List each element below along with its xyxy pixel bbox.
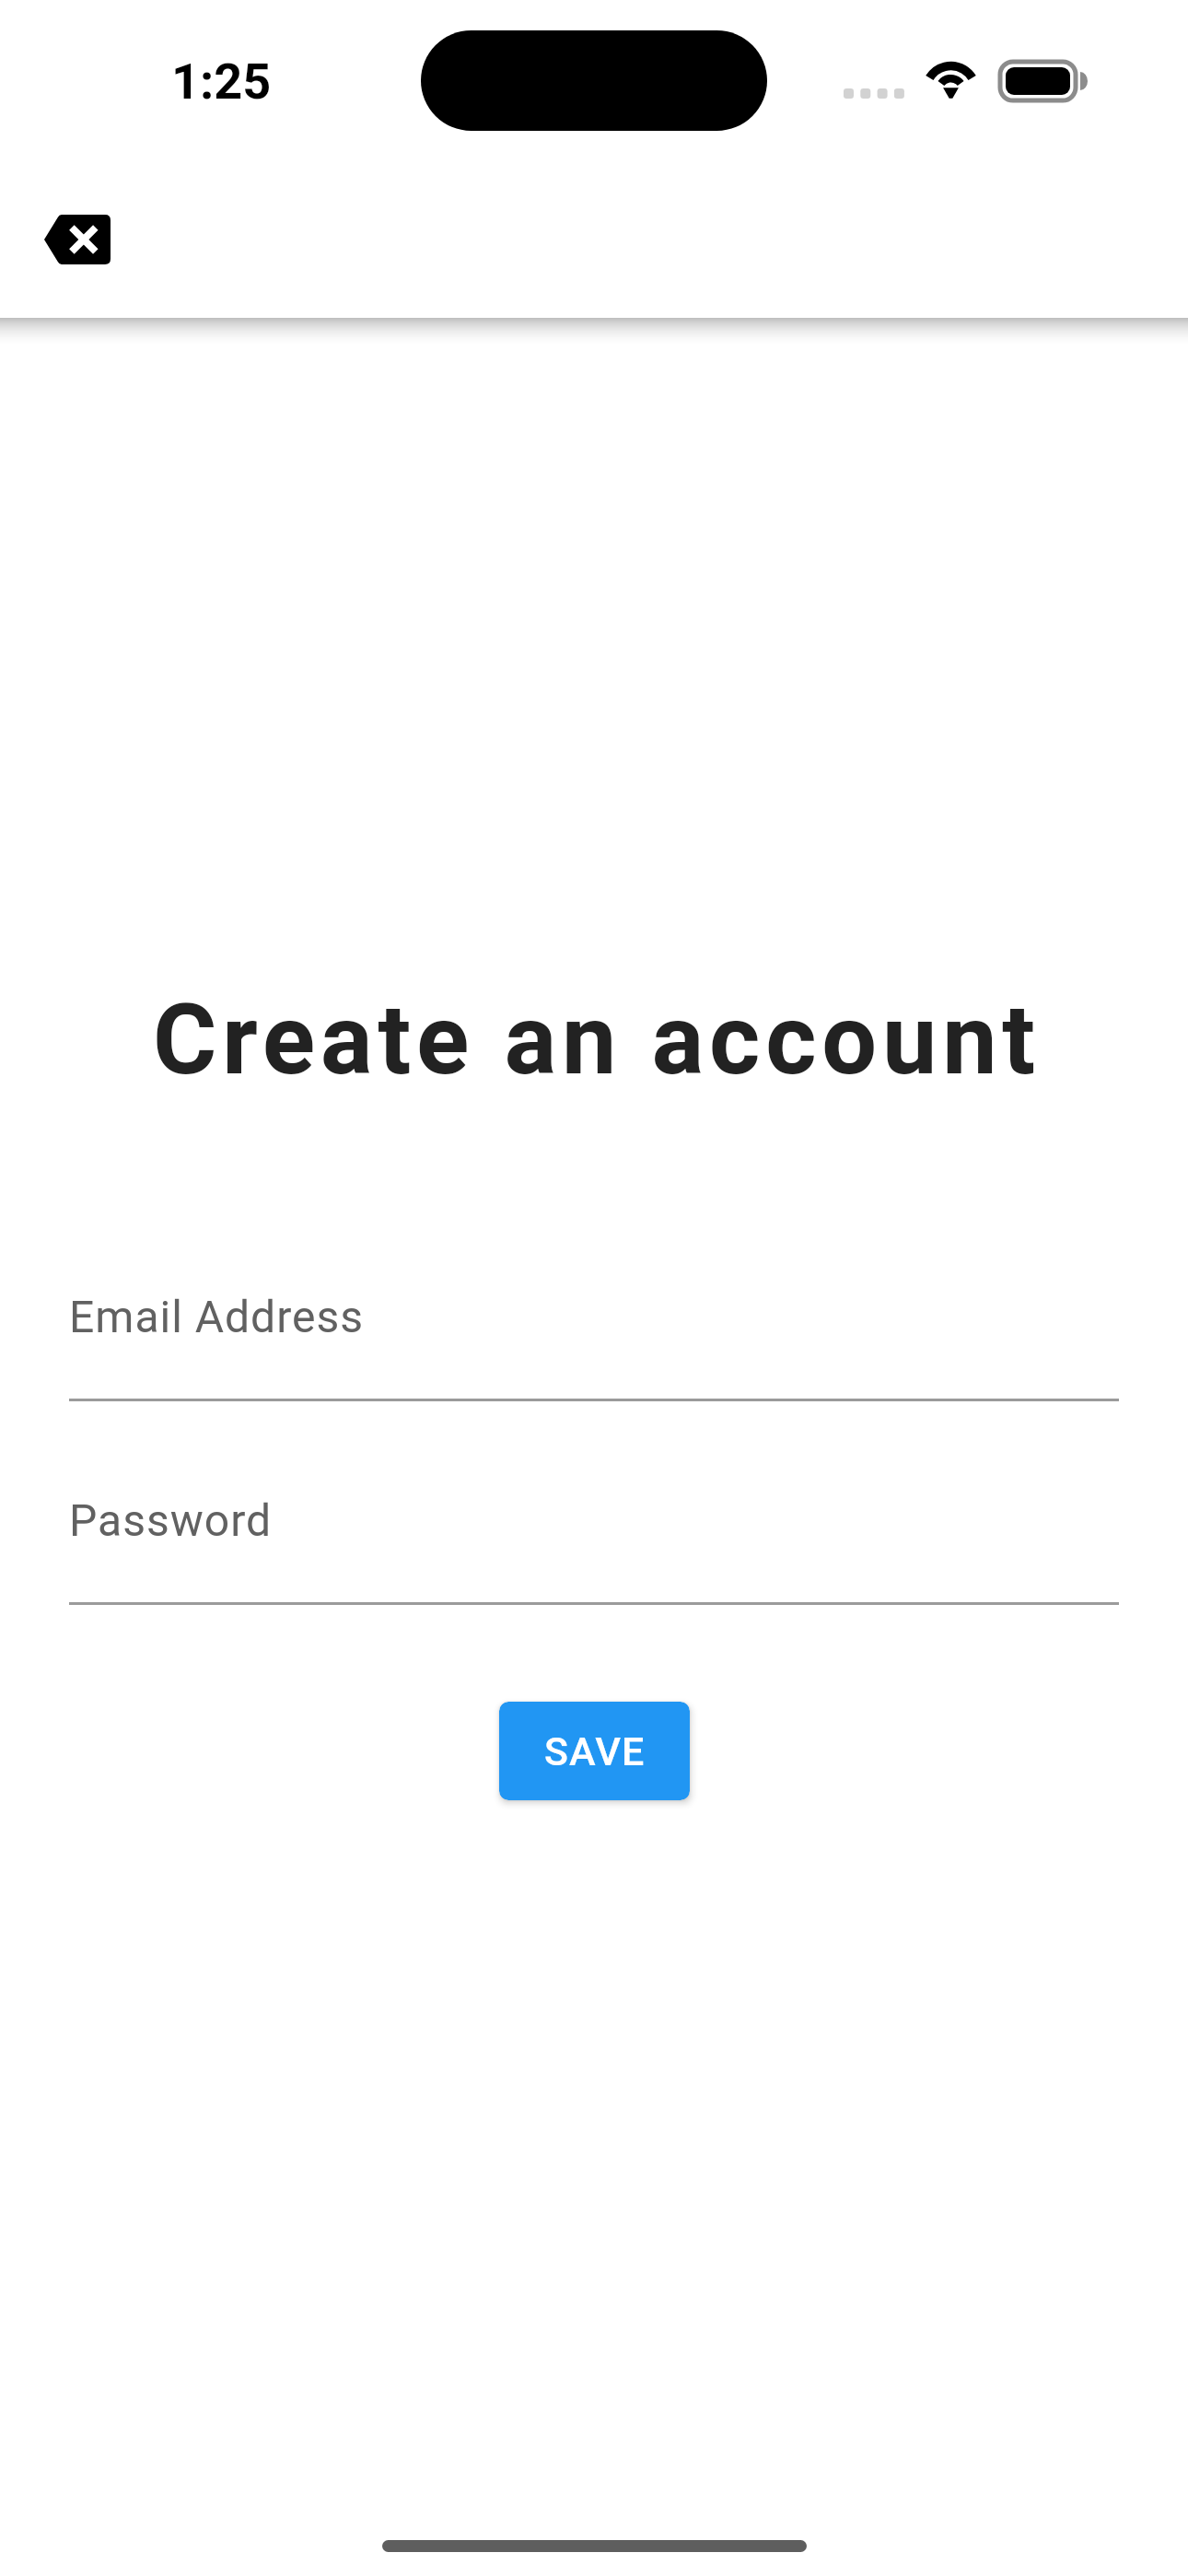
staticText: Password	[69, 1494, 273, 1546]
staticText: SAVE	[544, 1728, 646, 1774]
staticText: 1:25	[171, 53, 272, 111]
other: Status icons	[829, 51, 1096, 115]
button[interactable]: Close	[18, 181, 136, 299]
button[interactable]: SAVE	[499, 1702, 690, 1800]
staticText: Create an account	[3, 983, 1188, 1097]
button[interactable]: Email Address	[69, 1291, 1119, 1401]
button[interactable]: Password	[69, 1494, 1119, 1605]
staticText: Email Address	[69, 1291, 365, 1342]
